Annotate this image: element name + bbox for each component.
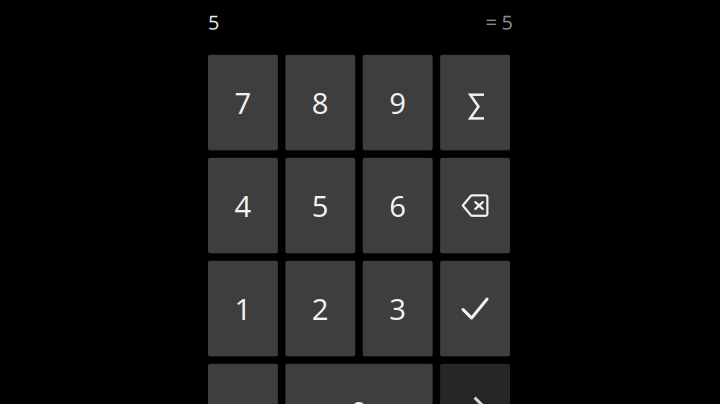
button[interactable]: 8 — [285, 55, 355, 150]
button[interactable]: 6 — [363, 158, 433, 253]
button[interactable]: Delete — [440, 158, 510, 253]
button[interactable]: 5 — [285, 158, 355, 253]
button[interactable]: 7 — [208, 55, 278, 150]
staticText: 4 — [234, 186, 251, 225]
button[interactable]: Next — [440, 364, 510, 404]
staticText: 1 — [234, 289, 251, 328]
button[interactable]: Done — [440, 261, 510, 356]
staticText: = 5 — [485, 9, 512, 35]
button[interactable]: 2 — [285, 261, 355, 356]
button[interactable]: 9 — [363, 55, 433, 150]
staticText: 0 — [350, 392, 367, 404]
staticText: 5 — [208, 9, 219, 35]
staticText: 3 — [389, 289, 406, 328]
button[interactable]: 0 — [285, 364, 433, 404]
staticText: 2 — [312, 289, 329, 328]
staticText: 7 — [234, 83, 251, 122]
staticText: 6 — [389, 186, 406, 225]
staticText: 8 — [312, 83, 329, 122]
staticText: 9 — [389, 83, 406, 122]
button[interactable]: 3 — [363, 261, 433, 356]
button[interactable]: 1 — [208, 261, 278, 356]
staticText: 5 — [312, 186, 329, 225]
button[interactable]: 4 — [208, 158, 278, 253]
button[interactable]: Sum — [440, 55, 510, 150]
